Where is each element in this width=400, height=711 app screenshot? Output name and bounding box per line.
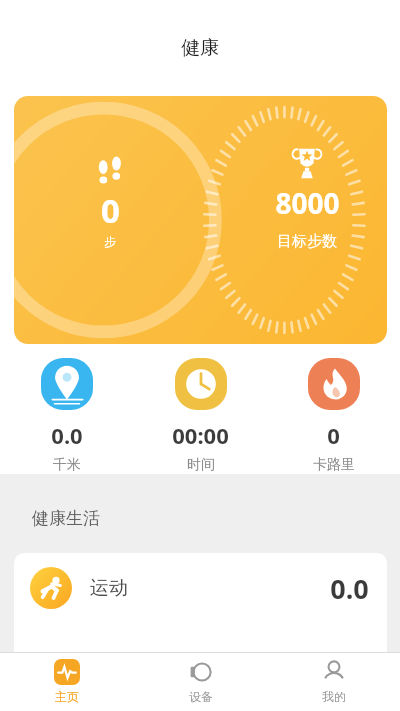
button[interactable]: 0 xyxy=(14,96,387,344)
staticText: 时间 xyxy=(187,456,215,474)
staticText: 0 xyxy=(101,188,120,233)
staticText: 我的 xyxy=(322,689,346,704)
staticText: 8000 xyxy=(275,184,340,222)
staticText: 健康生活 xyxy=(32,508,100,529)
staticText: 0.0 xyxy=(330,570,369,607)
staticText: 卡路里 xyxy=(313,456,355,474)
staticText: 运动 xyxy=(90,576,128,600)
button[interactable]: 0 xyxy=(267,358,400,474)
button[interactable]: 运动 xyxy=(14,553,387,652)
staticText: 0 xyxy=(327,420,340,450)
staticText: 步 xyxy=(104,234,116,249)
staticText: 目标步数 xyxy=(277,232,337,251)
button[interactable]: 主页 xyxy=(0,652,134,711)
staticText: 主页 xyxy=(55,689,79,704)
button[interactable]: 我的 xyxy=(267,652,400,711)
button[interactable]: 设备 xyxy=(134,652,267,711)
button[interactable]: 0.0 xyxy=(0,358,134,474)
staticText: 千米 xyxy=(53,456,81,474)
button[interactable]: 00:00 xyxy=(134,358,267,474)
staticText: 00:00 xyxy=(172,420,229,450)
staticText: 设备 xyxy=(189,689,213,704)
staticText: 健康 xyxy=(181,36,219,60)
staticText: 0.0 xyxy=(51,420,83,450)
